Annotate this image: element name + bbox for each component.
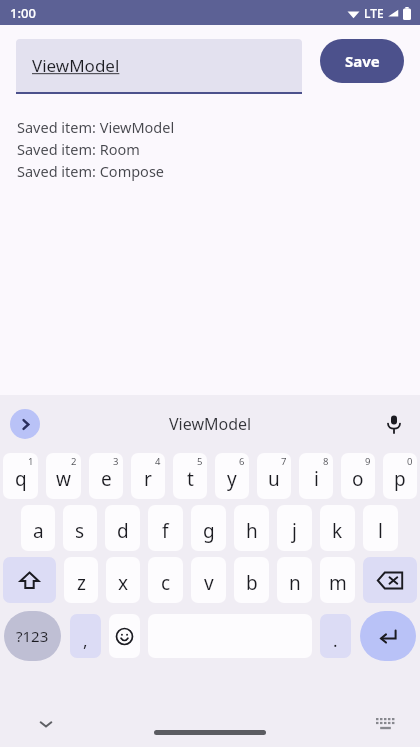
staticText: 2 — [71, 455, 77, 468]
staticText: o — [352, 466, 364, 492]
button[interactable]: u — [257, 453, 291, 499]
staticText: v — [204, 570, 214, 596]
staticText: y — [227, 466, 237, 492]
staticText: ?123 — [16, 626, 49, 646]
staticText: c — [161, 570, 171, 596]
staticText: . — [333, 629, 338, 652]
staticText: z — [77, 570, 86, 596]
staticText: s — [75, 518, 85, 544]
button[interactable]: e — [89, 453, 123, 499]
staticText: 8 — [323, 455, 329, 468]
staticText: 0 — [407, 455, 413, 468]
button[interactable]: ViewModel — [169, 413, 252, 435]
staticText: h — [246, 518, 258, 544]
staticText: r — [144, 466, 152, 492]
staticText: 1 — [28, 455, 34, 468]
staticText: j — [292, 518, 297, 544]
staticText: , — [83, 629, 88, 652]
staticText: Saved item: Room — [17, 139, 140, 159]
staticText: 1:00 — [10, 4, 36, 22]
staticText: Saved item: ViewModel — [17, 117, 175, 137]
staticText: p — [394, 466, 406, 492]
staticText: g — [203, 518, 215, 544]
staticText: 3 — [113, 455, 119, 468]
button[interactable]: . — [320, 614, 351, 658]
button[interactable]: t — [173, 453, 207, 499]
button[interactable]: c — [148, 557, 183, 603]
staticText: m — [329, 570, 347, 596]
button[interactable]: Switch keyboard — [372, 711, 398, 737]
button[interactable]: q — [3, 453, 38, 499]
staticText: Saved item: Compose — [17, 161, 165, 181]
staticText: 6 — [239, 455, 245, 468]
staticText: e — [101, 466, 112, 492]
button[interactable]: Backspace — [363, 557, 417, 603]
staticText: 9 — [365, 455, 371, 468]
staticText: ViewModel — [32, 54, 120, 77]
button[interactable]: ?123 — [4, 611, 61, 661]
button[interactable]: j — [277, 505, 312, 551]
staticText: k — [332, 518, 343, 544]
staticText: l — [378, 518, 383, 544]
staticText: t — [187, 466, 194, 492]
staticText: 4 — [155, 455, 161, 468]
button[interactable]: Save — [320, 39, 404, 83]
staticText: d — [117, 518, 129, 544]
button[interactable]: v — [191, 557, 226, 603]
button[interactable]: Enter — [360, 611, 416, 661]
button[interactable]: Hide keyboard — [33, 711, 59, 737]
button[interactable]: p — [383, 453, 417, 499]
button[interactable]: More suggestions — [10, 409, 40, 439]
button[interactable]: k — [320, 505, 355, 551]
staticText: n — [289, 570, 301, 596]
button[interactable]: d — [105, 505, 140, 551]
staticText: 7 — [281, 455, 287, 468]
button[interactable]: ViewModel — [16, 39, 302, 94]
button[interactable]: w — [46, 453, 81, 499]
button[interactable]: x — [106, 557, 140, 603]
button[interactable]: h — [234, 505, 269, 551]
button[interactable]: Shift — [3, 557, 56, 603]
staticText: u — [268, 466, 280, 492]
button[interactable]: r — [131, 453, 165, 499]
button[interactable]: , — [70, 614, 101, 658]
button[interactable]: s — [63, 505, 97, 551]
staticText: LTE — [364, 5, 384, 21]
staticText: x — [118, 570, 129, 596]
button[interactable]: m — [320, 557, 355, 603]
staticText: q — [15, 466, 27, 492]
button[interactable]: z — [64, 557, 98, 603]
staticText: ViewModel — [169, 413, 252, 435]
button[interactable]: f — [148, 505, 183, 551]
button[interactable]: o — [341, 453, 375, 499]
button[interactable]: y — [215, 453, 249, 499]
staticText: w — [56, 466, 71, 492]
staticText: i — [314, 466, 319, 492]
button[interactable]: b — [234, 557, 269, 603]
button[interactable]: i — [299, 453, 333, 499]
staticText: f — [162, 518, 169, 544]
staticText: Save — [345, 51, 380, 71]
button[interactable]: Emoji — [109, 614, 140, 658]
button[interactable]: l — [363, 505, 398, 551]
button[interactable]: n — [277, 557, 312, 603]
button[interactable]: Voice input — [380, 410, 408, 438]
staticText: 5 — [197, 455, 203, 468]
staticText: b — [246, 570, 258, 596]
button[interactable]: a — [21, 505, 55, 551]
staticText: a — [33, 518, 44, 544]
button[interactable]: g — [191, 505, 226, 551]
